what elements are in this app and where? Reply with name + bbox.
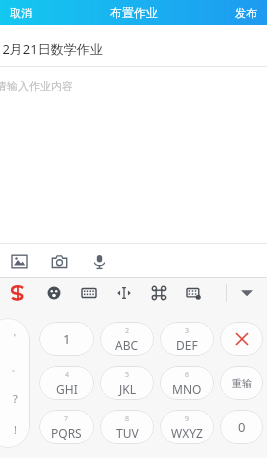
staticText: 1 — [63, 330, 71, 348]
staticText: 。 — [12, 364, 19, 373]
button[interactable]: 重输 — [220, 366, 263, 400]
button[interactable]: 请输入作业内容 — [0, 76, 267, 96]
staticText: ABC — [115, 337, 139, 353]
button[interactable]: Insert image — [4, 246, 34, 276]
staticText: ? — [13, 391, 18, 406]
button[interactable]: 9 — [160, 410, 214, 444]
button[interactable]: 8 — [100, 410, 154, 444]
button[interactable]: Keyboard layout — [71, 278, 106, 308]
button[interactable]: Punctuation — [0, 318, 30, 448]
staticText: 请输入作业内容 — [0, 79, 73, 93]
staticText: PQRS — [51, 425, 82, 441]
button[interactable]: 3 — [160, 322, 214, 356]
staticText: 3 — [185, 326, 190, 336]
button[interactable]: 0 — [220, 410, 263, 444]
staticText: 取消 — [10, 6, 32, 20]
button[interactable]: Shortcuts — [141, 278, 176, 308]
staticText: 0 — [238, 418, 246, 436]
staticText: 4 — [65, 370, 70, 380]
staticText: TUV — [116, 425, 139, 441]
staticText: 12月21日数学作业 — [0, 40, 103, 58]
button[interactable]: 6 — [160, 366, 214, 400]
button[interactable]: Camera — [44, 246, 74, 276]
staticText: JKL — [119, 381, 136, 397]
button[interactable]: 4 — [39, 366, 94, 400]
staticText: GHI — [56, 381, 78, 397]
button[interactable]: Delete — [220, 322, 263, 356]
staticText: 7 — [64, 414, 69, 424]
staticText: WXYZ — [171, 425, 203, 441]
staticText: 6 — [185, 370, 190, 380]
staticText: 重输 — [232, 377, 252, 390]
staticText: 8 — [125, 414, 130, 424]
button[interactable]: Voice input — [84, 246, 114, 276]
button[interactable]: 1 — [39, 322, 94, 356]
staticText: ! — [14, 422, 17, 437]
staticText: 2 — [125, 326, 130, 336]
button[interactable]: Move cursor — [106, 278, 141, 308]
staticText: 9 — [185, 414, 190, 424]
staticText: MNO — [172, 381, 202, 397]
button[interactable]: Hide keyboard — [227, 278, 267, 308]
button[interactable]: 取消 — [0, 3, 42, 23]
staticText: 布置作业 — [110, 5, 158, 20]
button[interactable]: Sogou input method — [0, 278, 36, 308]
staticText: DEF — [176, 337, 198, 353]
button[interactable]: 发布 — [225, 3, 267, 23]
staticText: 5 — [125, 370, 130, 380]
button[interactable]: 5 — [100, 366, 154, 400]
button[interactable]: 12月21日数学作业 — [0, 37, 267, 61]
staticText: 发布 — [235, 6, 257, 20]
button[interactable]: Keyboard settings — [176, 278, 211, 308]
button[interactable]: Emoji — [36, 278, 71, 308]
staticText: ' — [14, 332, 16, 343]
button[interactable]: 7 — [39, 410, 94, 444]
button[interactable]: 2 — [100, 322, 154, 356]
